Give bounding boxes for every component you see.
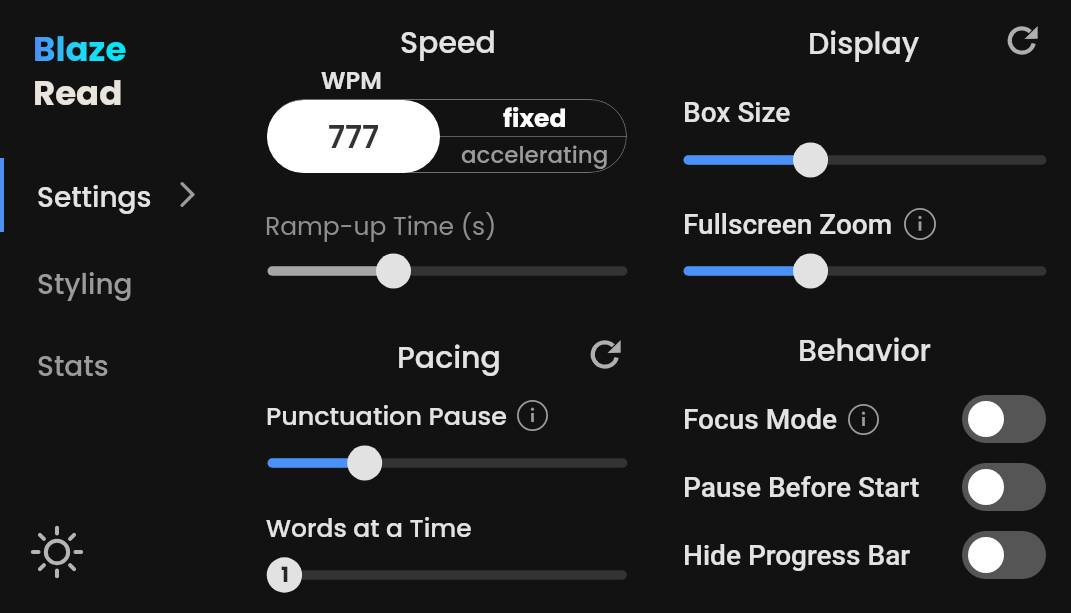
staticText: Box Size <box>683 96 791 129</box>
staticText: Settings <box>37 178 152 217</box>
staticText: Stats <box>37 347 109 386</box>
staticText: 1 <box>281 560 289 589</box>
button[interactable]: Pause before start <box>962 463 1046 511</box>
staticText: Pacing <box>397 337 501 379</box>
button[interactable]: fixed <box>442 100 627 137</box>
staticText: Speed <box>400 22 496 64</box>
button[interactable]: Hide progress bar <box>962 531 1046 579</box>
button[interactable]: Stats <box>0 338 228 398</box>
staticText: accelerating <box>461 139 609 171</box>
staticText: WPM <box>321 64 382 98</box>
staticText: Pause Before Start <box>683 471 920 504</box>
button[interactable]: Words at a time <box>250 555 644 595</box>
staticText: Read <box>33 69 123 117</box>
staticText: Hide Progress Bar <box>683 539 911 572</box>
staticText: Punctuation Pause <box>266 398 507 434</box>
button[interactable]: Box size <box>666 140 1063 180</box>
button[interactable]: Reset display <box>1007 25 1038 56</box>
button[interactable]: Styling <box>0 253 228 313</box>
button[interactable]: Punctuation pause <box>250 443 644 483</box>
button[interactable]: Fullscreen zoom <box>666 251 1063 291</box>
button[interactable]: Settings <box>0 158 228 232</box>
staticText: Blaze <box>33 25 127 73</box>
staticText: Focus Mode <box>683 403 838 436</box>
staticText: Words at a Time <box>266 511 472 546</box>
button[interactable]: Brightness <box>31 526 83 578</box>
staticText: Styling <box>37 265 133 304</box>
button[interactable]: accelerating <box>442 137 627 173</box>
staticText: Display <box>808 23 920 65</box>
staticText: 777 <box>328 115 379 158</box>
staticText: Ramp-up Time (s) <box>265 209 497 244</box>
button[interactable]: Reset pacing <box>590 339 621 370</box>
staticText: Behavior <box>798 330 932 372</box>
button[interactable]: Focus mode <box>962 395 1046 443</box>
staticText: Fullscreen Zoom <box>683 208 893 241</box>
button[interactable]: 777 <box>267 100 440 173</box>
staticText: fixed <box>503 101 567 136</box>
button[interactable]: Ramp-up time <box>250 251 644 291</box>
